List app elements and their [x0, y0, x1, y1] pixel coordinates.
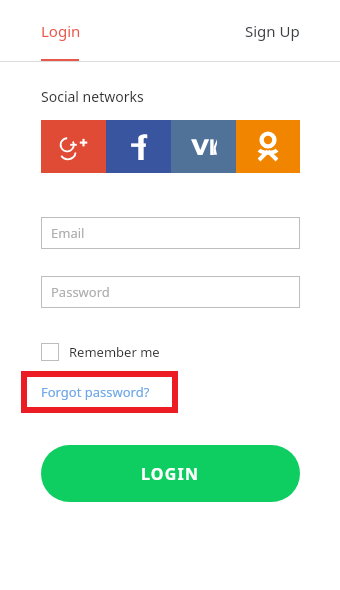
- button[interactable]: Password: [41, 276, 300, 308]
- button[interactable]: Login: [28, 0, 92, 62]
- button[interactable]: Remember me: [41, 340, 160, 364]
- staticText: Password: [51, 283, 110, 301]
- staticText: Email: [51, 224, 85, 242]
- staticText: Login: [41, 21, 81, 41]
- staticText: Social networks: [41, 87, 144, 106]
- button[interactable]: Sign Up: [232, 0, 312, 62]
- button[interactable]: LOGIN: [41, 445, 300, 502]
- button[interactable]: Email: [41, 217, 300, 249]
- button[interactable]: Sign in with Odnoklassniki: [236, 120, 300, 173]
- staticText: Remember me: [69, 343, 160, 361]
- button[interactable]: Sign in with VK: [171, 120, 236, 173]
- button[interactable]: Sign in with Google Plus: [41, 120, 106, 173]
- staticText: Forgot password?: [41, 383, 150, 401]
- button[interactable]: Sign in with Facebook: [106, 120, 171, 173]
- button[interactable]: Forgot password?: [41, 383, 150, 401]
- staticText: Sign Up: [245, 21, 300, 41]
- staticText: LOGIN: [141, 463, 200, 485]
